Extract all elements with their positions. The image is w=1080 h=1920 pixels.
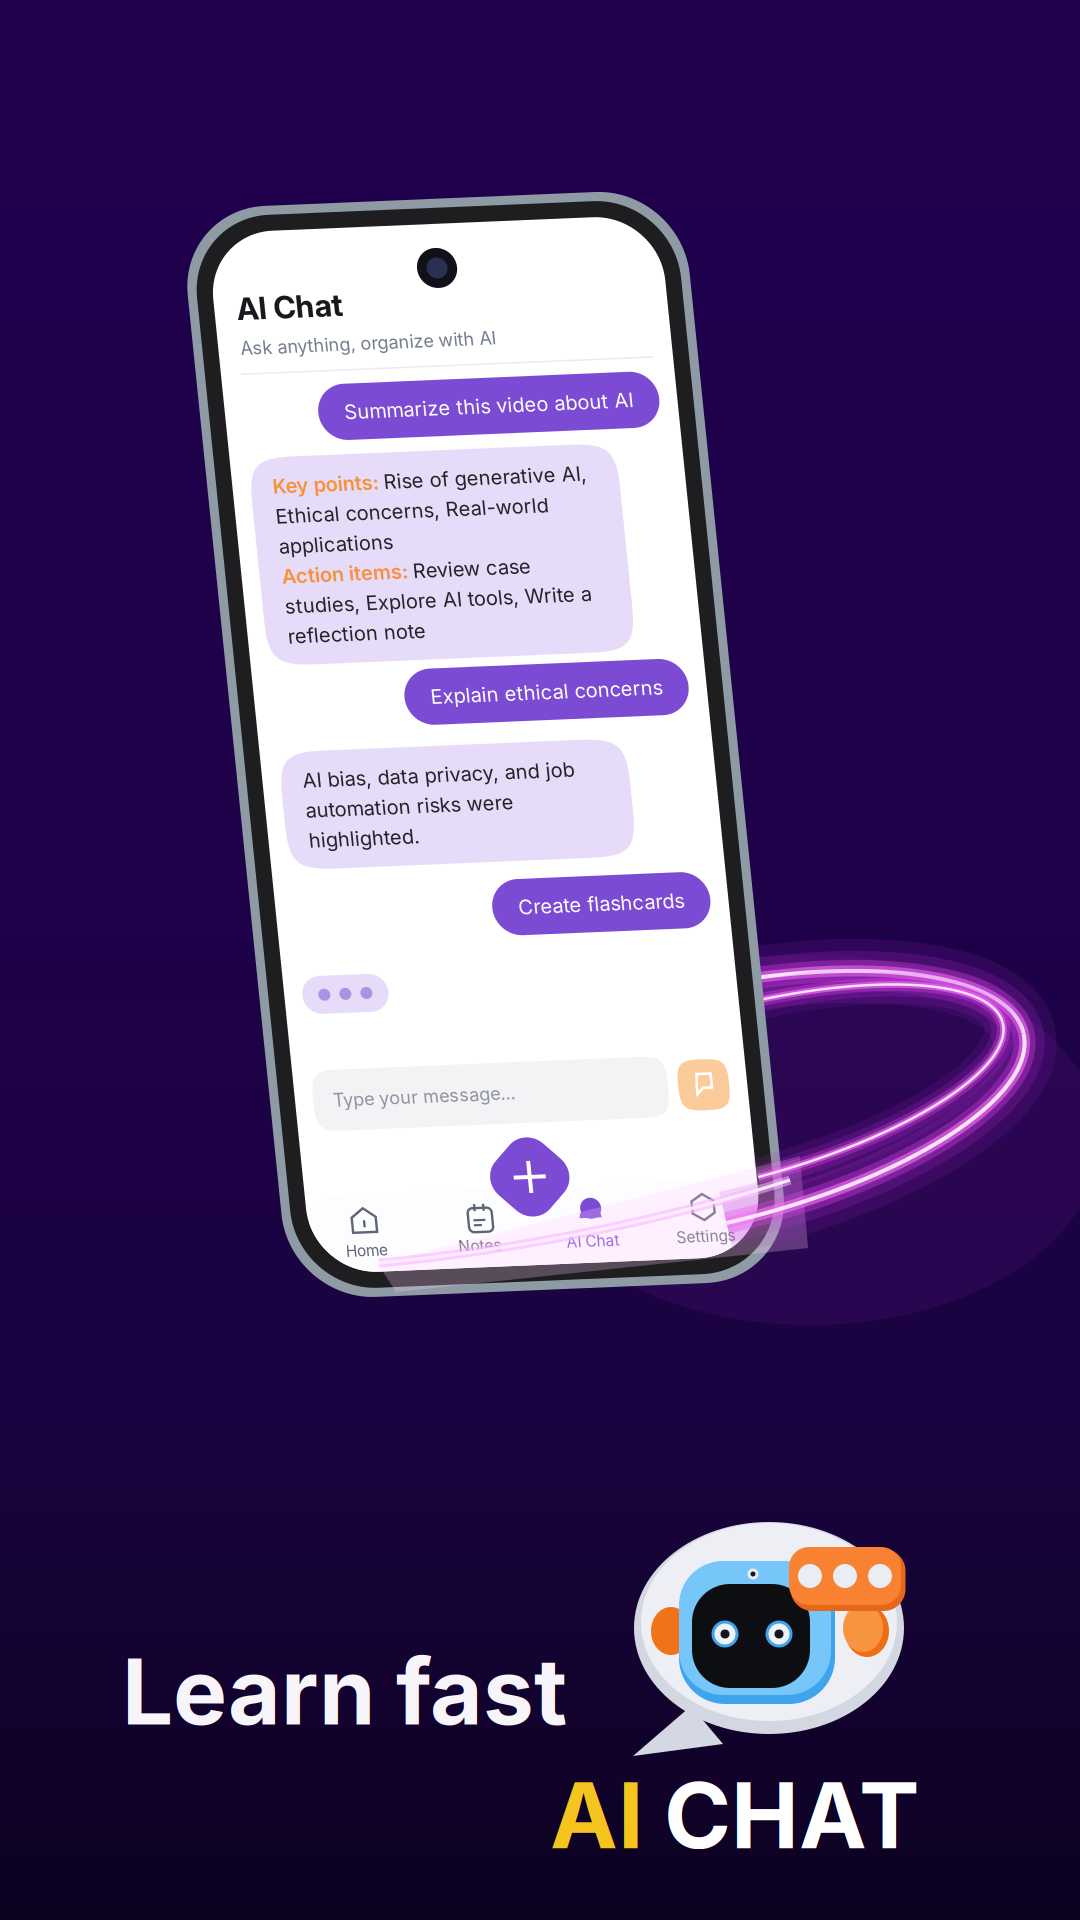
- staticText: Create flashcards: [446, 906, 612, 930]
- staticText: studies, Explore AI tools, Write a: [244, 597, 551, 621]
- staticText: Ethical concerns, Real-world: [244, 507, 517, 531]
- staticText: Rise of generative AI,: [355, 477, 558, 501]
- button[interactable]: Notes: [317, 1210, 430, 1263]
- button[interactable]: Create flashcards: [420, 890, 638, 946]
- staticText: applications: [244, 537, 358, 561]
- staticText: automation risks were: [244, 801, 452, 825]
- staticText: Type your message...: [242, 1092, 424, 1114]
- button[interactable]: AI Chat: [430, 1210, 543, 1263]
- button[interactable]: Send: [587, 1077, 638, 1128]
- staticText: Key points:: [244, 477, 355, 501]
- button[interactable]: Settings: [543, 1210, 656, 1263]
- staticText: AI: [550, 1760, 643, 1870]
- staticText: Notes: [352, 1245, 395, 1263]
- button[interactable]: Home: [204, 1210, 317, 1263]
- staticText: Summarize this video about AI: [323, 406, 612, 430]
- staticText: Settings: [570, 1245, 629, 1263]
- staticText: Ask anything, organize with AI: [226, 340, 482, 361]
- staticText: AI Chat: [226, 292, 332, 330]
- staticText: Action items:: [244, 567, 375, 591]
- staticText: Review case: [375, 567, 493, 591]
- button[interactable]: Explain ethical concerns: [354, 677, 638, 733]
- staticText: highlighted.: [244, 831, 355, 855]
- staticText: Learn fast: [122, 1637, 567, 1746]
- staticText: Explain ethical concerns: [380, 693, 612, 717]
- staticText: reflection note: [244, 627, 382, 651]
- staticText: CHAT: [643, 1760, 920, 1870]
- staticText: AI Chat: [460, 1245, 513, 1263]
- staticText: AI bias, data privacy, and job: [244, 771, 516, 795]
- button[interactable]: Summarize this video about AI: [297, 390, 638, 446]
